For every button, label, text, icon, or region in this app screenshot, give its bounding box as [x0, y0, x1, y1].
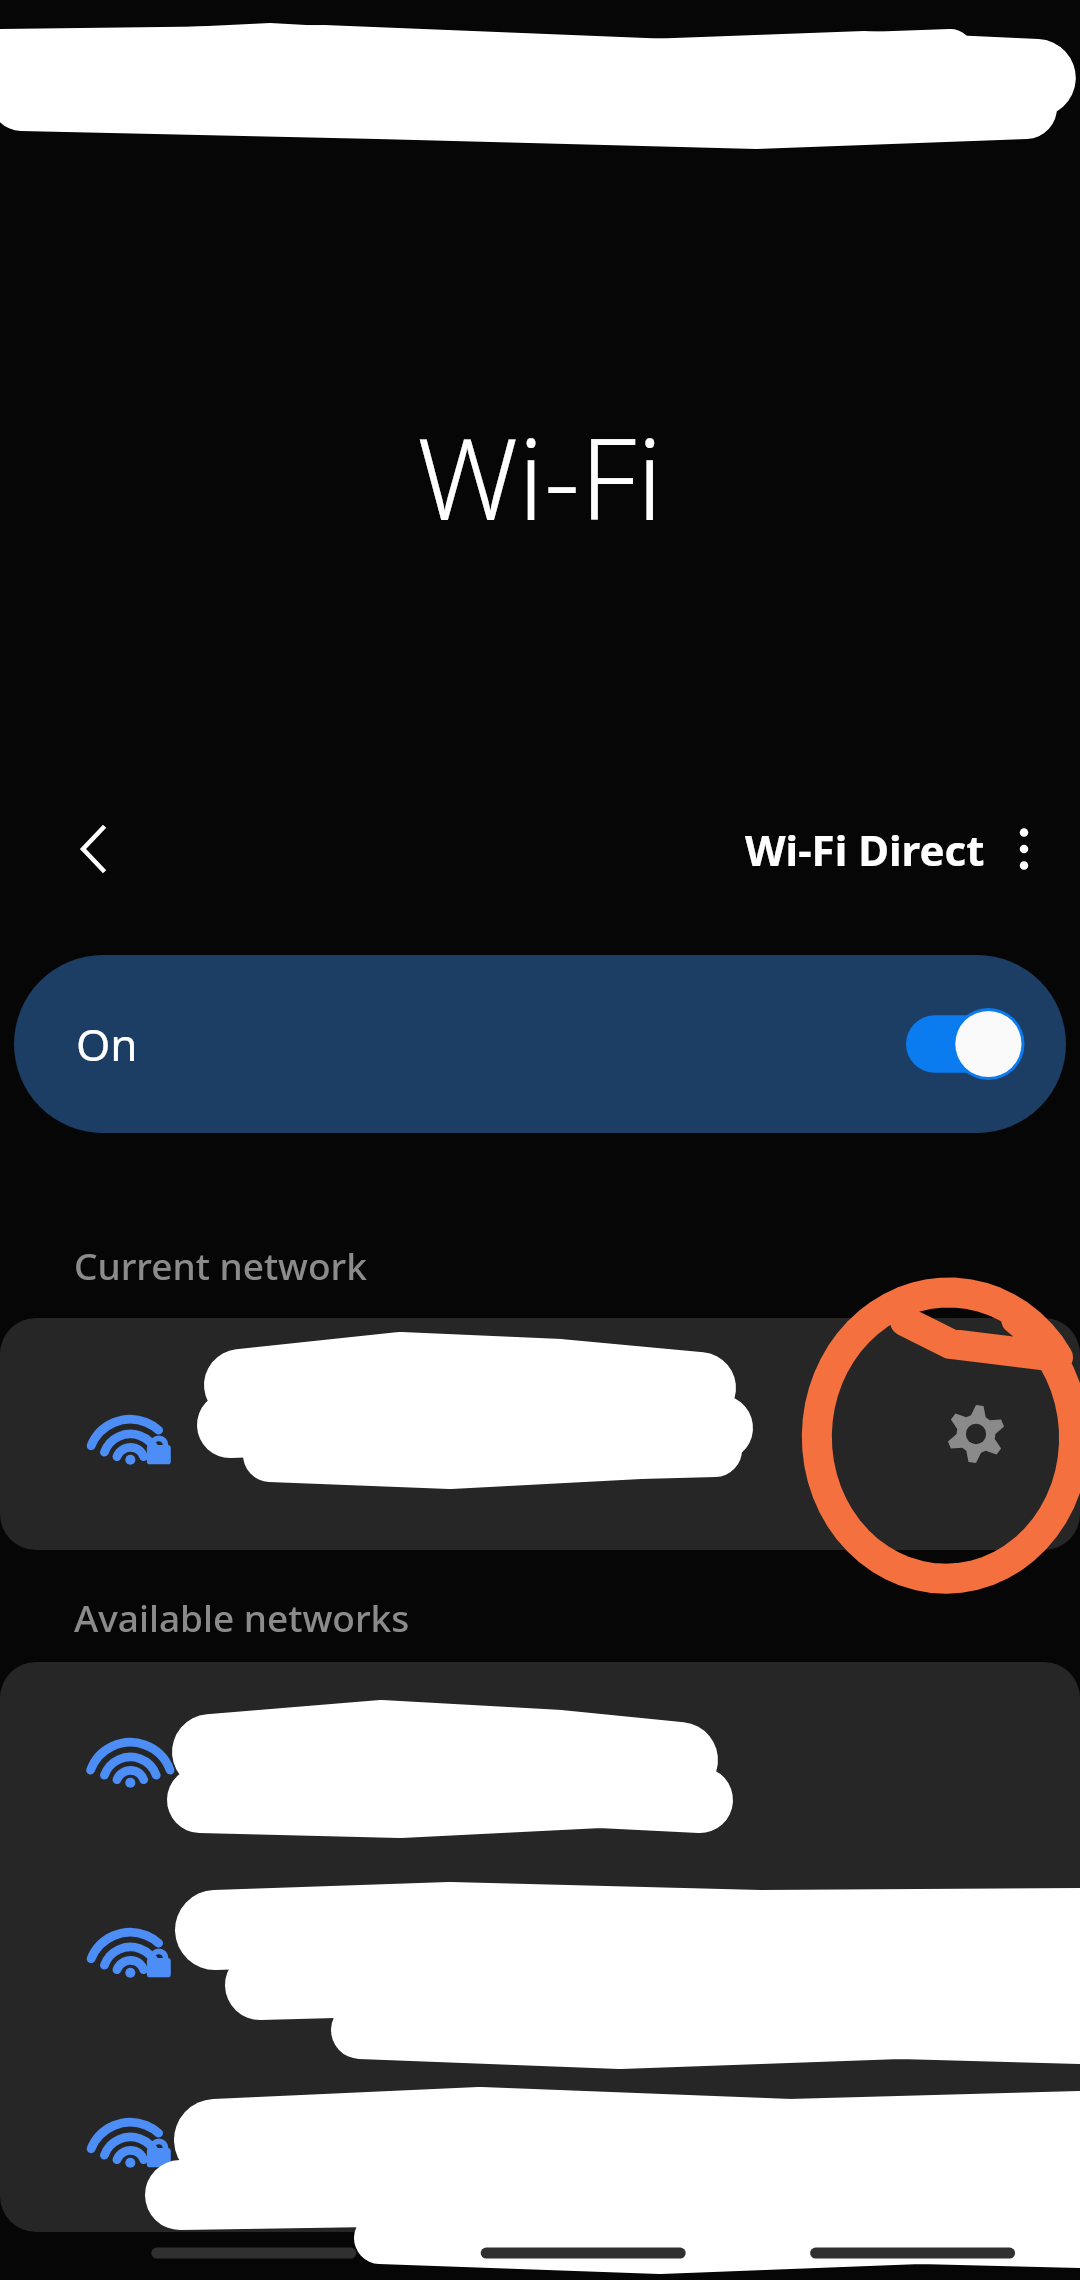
staticText: Wi-Fi: [0, 400, 1080, 553]
staticText: Wi-Fi Direct: [745, 821, 985, 878]
button[interactable]: Wi-Fi Direct: [745, 821, 985, 878]
staticText: On: [76, 1014, 138, 1074]
button[interactable]: Connected: [0, 1318, 1080, 1550]
button[interactable]: Network settings: [920, 1378, 1032, 1490]
staticText: Available networks: [74, 1592, 410, 1642]
button[interactable]: Back: [40, 794, 150, 904]
button[interactable]: [0, 1662, 1080, 1852]
button[interactable]: [0, 2042, 1080, 2232]
staticText: Connected: [265, 1434, 458, 1486]
button[interactable]: More options: [976, 801, 1072, 897]
button[interactable]: On: [14, 955, 1066, 1133]
staticText: Current network: [74, 1240, 367, 1290]
button[interactable]: [0, 1852, 1080, 2042]
